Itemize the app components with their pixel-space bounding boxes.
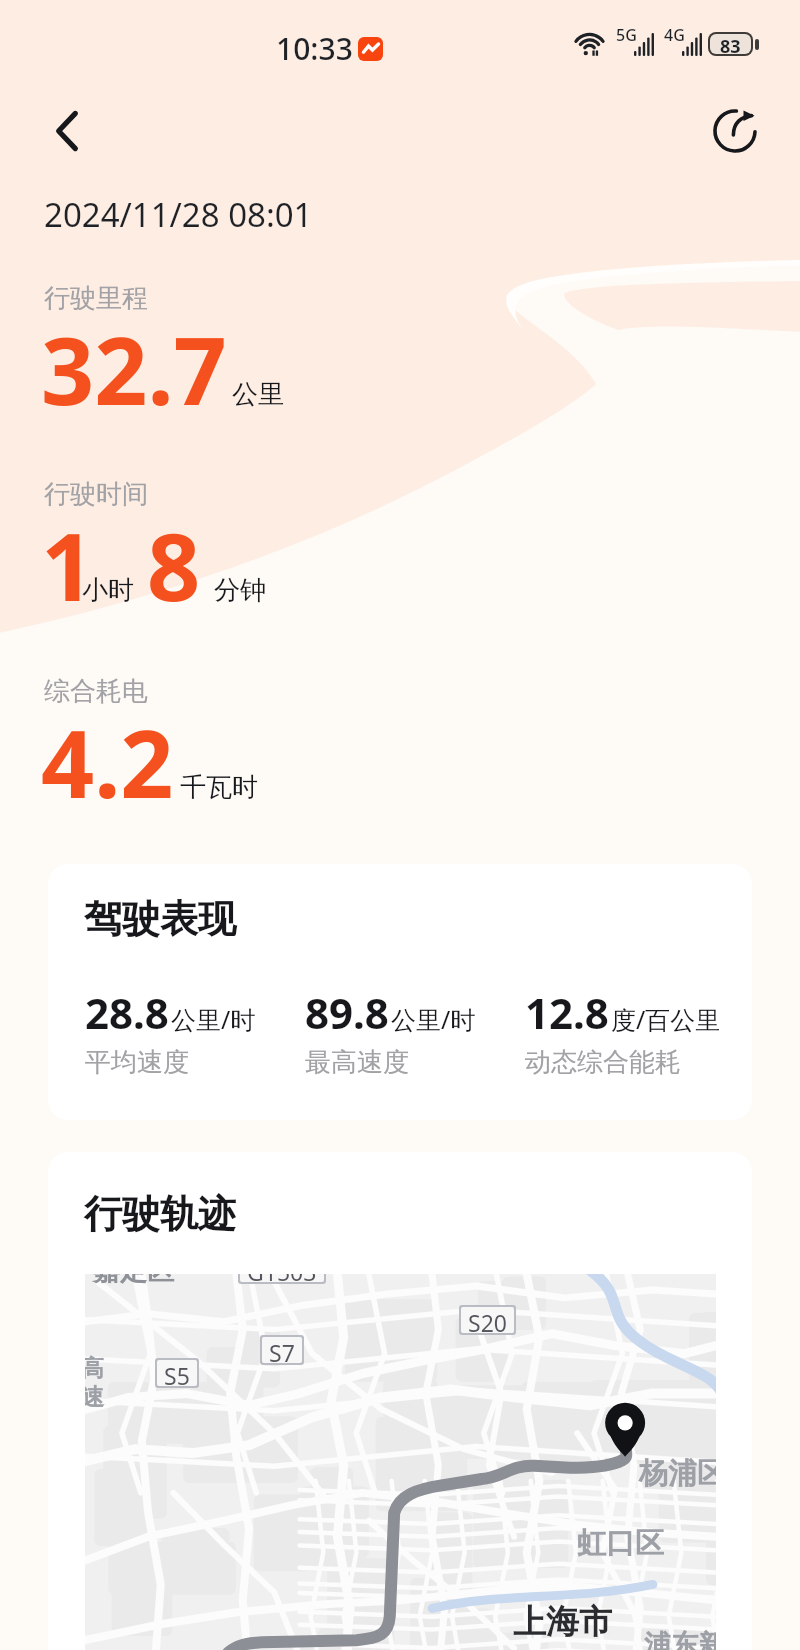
staticText: S5	[164, 1360, 190, 1386]
staticText: 速	[85, 1383, 104, 1412]
staticText: 高	[85, 1354, 104, 1383]
staticText: 行驶里程	[44, 282, 148, 315]
staticText: 5G	[616, 24, 637, 46]
staticText: 10:33	[276, 28, 353, 69]
staticText: 4.2	[41, 699, 174, 826]
staticText: 2024/11/28 08:01	[44, 192, 313, 237]
staticText: 28.8	[85, 984, 169, 1041]
staticText: 分钟	[214, 574, 266, 607]
staticText: 浦东新	[644, 1628, 716, 1650]
staticText: 8	[147, 502, 201, 629]
staticText: 嘉定区	[93, 1274, 174, 1288]
button[interactable]: 行驶轨迹	[48, 1152, 752, 1650]
staticText: 杨浦区	[639, 1455, 716, 1492]
staticText: 32.7	[41, 306, 227, 433]
staticText: 驾驶表现	[84, 895, 236, 943]
staticText: 小时	[82, 574, 134, 607]
staticText: 千瓦时	[180, 771, 258, 804]
staticText: 89.8	[305, 984, 389, 1041]
staticText: S7	[269, 1337, 295, 1363]
staticText: 公里/时	[391, 1002, 476, 1036]
staticText: 动态综合能耗	[525, 1046, 681, 1079]
staticText: 4G	[664, 24, 685, 46]
staticText: 平均速度	[85, 1046, 189, 1079]
staticText: 12.8	[525, 984, 609, 1041]
button[interactable]: 驾驶表现	[48, 864, 752, 1120]
staticText: 最高速度	[305, 1046, 409, 1079]
staticText: 行驶轨迹	[84, 1190, 236, 1238]
staticText: 行驶时间	[44, 478, 148, 511]
staticText: 83	[720, 34, 741, 54]
staticText: S20	[468, 1307, 507, 1333]
staticText: 度/百公里	[611, 1002, 721, 1036]
staticText: 公里/时	[171, 1002, 256, 1036]
button[interactable]: Back	[33, 97, 101, 165]
staticText: 虹口区	[577, 1525, 664, 1562]
button[interactable]: Share	[701, 97, 769, 165]
staticText: 上海市	[513, 1601, 612, 1643]
staticText: 公里	[232, 378, 284, 411]
staticText: 1	[41, 502, 95, 629]
staticText: G1503	[247, 1274, 317, 1282]
staticText: 综合耗电	[44, 675, 148, 708]
